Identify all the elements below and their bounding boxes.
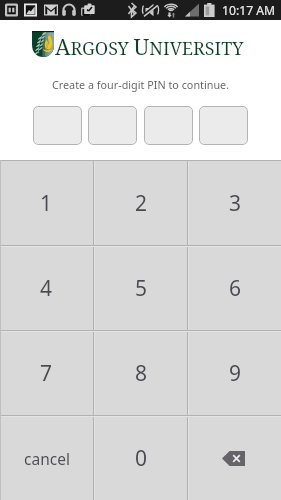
staticText: 2 (135, 189, 148, 218)
button[interactable]: 2 (95, 161, 187, 245)
staticText: 3 (229, 189, 242, 218)
staticText: ARGOSY UNIVERSITY (55, 31, 244, 61)
staticText: 9 (229, 359, 242, 388)
button[interactable] (33, 106, 82, 145)
button[interactable]: 3 (189, 161, 281, 245)
staticText: 8 (135, 359, 148, 388)
staticText: 6 (229, 274, 242, 303)
button[interactable]: 6 (189, 247, 281, 330)
button[interactable]: 5 (95, 247, 187, 330)
button[interactable]: cancel (0, 417, 93, 500)
other: Delete (222, 451, 245, 466)
button[interactable]: 0 (95, 417, 187, 500)
button[interactable]: 7 (0, 332, 93, 415)
button[interactable] (88, 106, 137, 145)
button[interactable] (199, 106, 248, 145)
staticText: cancel (24, 448, 70, 469)
staticText: 1 (40, 189, 53, 218)
staticText: 10:17 AM (222, 2, 276, 19)
button[interactable]: 4 (0, 247, 93, 330)
staticText: 7 (40, 359, 53, 388)
button[interactable]: 1 (0, 161, 93, 245)
button[interactable]: Delete (189, 417, 281, 500)
staticText: Create a four-digit PIN to continue. (0, 77, 281, 92)
staticText: 0 (135, 444, 148, 473)
button[interactable]: 8 (95, 332, 187, 415)
button[interactable]: 9 (189, 332, 281, 415)
staticText: 4 (40, 274, 53, 303)
button[interactable] (144, 106, 193, 145)
staticText: 5 (135, 274, 148, 303)
